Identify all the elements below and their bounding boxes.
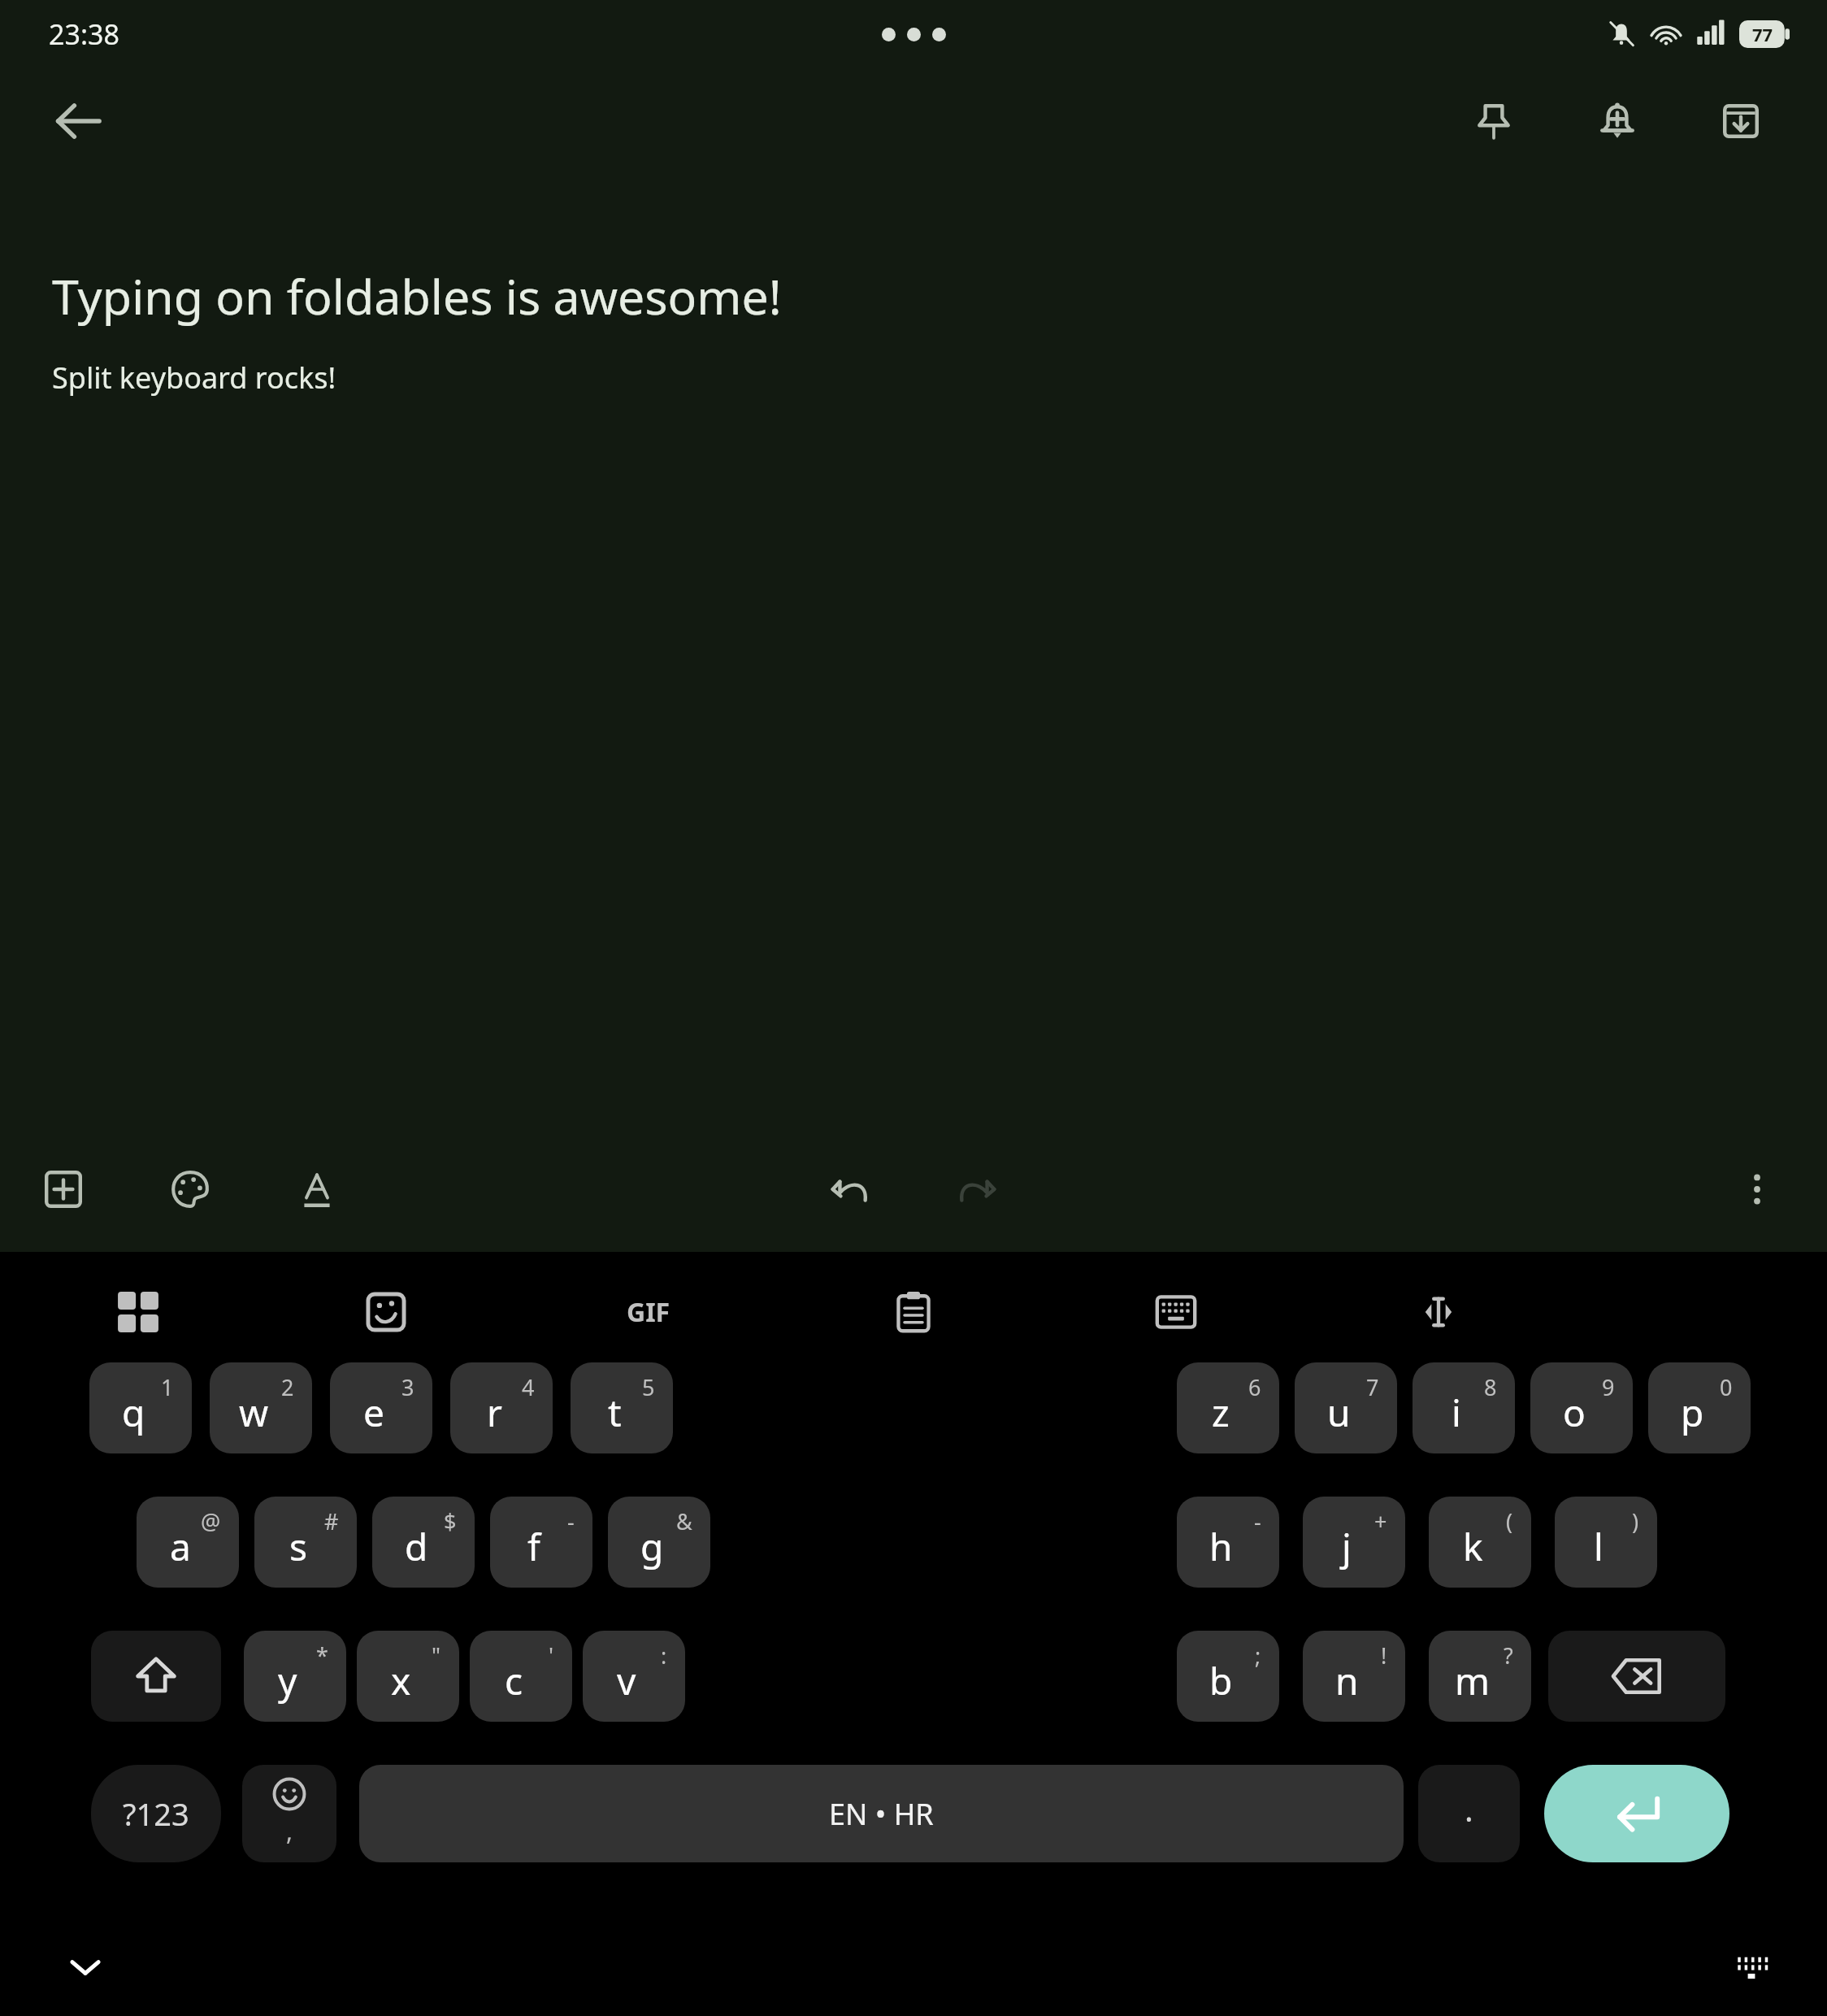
staticText: 9: [1602, 1372, 1615, 1402]
staticText: x: [391, 1655, 411, 1706]
staticText: h: [1209, 1521, 1233, 1572]
button[interactable]: d: [372, 1497, 475, 1588]
staticText: 3: [401, 1372, 414, 1402]
button[interactable]: w: [210, 1362, 312, 1453]
staticText: #: [324, 1506, 339, 1536]
button[interactable]: More options: [1720, 1152, 1794, 1227]
button[interactable]: Stickers: [341, 1267, 432, 1358]
button[interactable]: v: [583, 1631, 685, 1722]
staticText: k: [1463, 1521, 1483, 1572]
staticText: ?: [1504, 1640, 1513, 1671]
button[interactable]: Formatting: [280, 1152, 354, 1227]
staticText: g: [640, 1521, 664, 1572]
staticText: ?123: [123, 1792, 189, 1835]
staticText: GIF: [627, 1294, 670, 1330]
button[interactable]: EN • HR: [359, 1765, 1404, 1862]
button[interactable]: c: [470, 1631, 572, 1722]
staticText: 1: [161, 1372, 174, 1402]
button[interactable]: ?123: [91, 1765, 221, 1862]
staticText: !: [1381, 1640, 1387, 1671]
button[interactable]: Switch keyboard: [1716, 1932, 1786, 2002]
staticText: ): [1632, 1506, 1639, 1536]
button[interactable]: Enter: [1544, 1765, 1729, 1862]
staticText: i: [1452, 1387, 1461, 1438]
staticText: EN • HR: [829, 1794, 934, 1834]
staticText: a: [170, 1521, 191, 1572]
staticText: 4: [522, 1372, 535, 1402]
staticText: z: [1212, 1387, 1230, 1438]
button[interactable]: b: [1177, 1631, 1279, 1722]
staticText: u: [1327, 1387, 1351, 1438]
staticText: :: [661, 1640, 667, 1671]
button[interactable]: Clipboard: [868, 1267, 959, 1358]
staticText: 2: [281, 1372, 294, 1402]
button[interactable]: r: [450, 1362, 553, 1453]
staticText: ': [549, 1640, 554, 1671]
staticText: ": [432, 1640, 441, 1671]
button[interactable]: Redo: [938, 1152, 1013, 1227]
button[interactable]: Add attachment: [26, 1152, 101, 1227]
button[interactable]: Emoji: [242, 1765, 336, 1862]
staticText: d: [405, 1521, 428, 1572]
staticText: $: [444, 1506, 457, 1536]
button[interactable]: j: [1303, 1497, 1405, 1588]
button[interactable]: e: [330, 1362, 432, 1453]
staticText: n: [1335, 1655, 1359, 1706]
staticText: ;: [1255, 1640, 1261, 1671]
staticText: ,: [286, 1814, 293, 1848]
button[interactable]: Period: [1418, 1765, 1520, 1862]
button[interactable]: a: [137, 1497, 239, 1588]
staticText: 8: [1484, 1372, 1497, 1402]
button[interactable]: o: [1530, 1362, 1633, 1453]
button[interactable]: Archive: [1703, 84, 1778, 159]
button[interactable]: f: [490, 1497, 592, 1588]
staticText: +: [1374, 1506, 1387, 1536]
button[interactable]: Background colour: [153, 1152, 228, 1227]
button[interactable]: k: [1429, 1497, 1531, 1588]
staticText: &: [676, 1506, 692, 1536]
staticText: e: [363, 1387, 384, 1438]
button[interactable]: Hide keyboard: [50, 1932, 120, 2002]
staticText: -: [1254, 1506, 1261, 1536]
button[interactable]: p: [1648, 1362, 1751, 1453]
staticText: s: [289, 1521, 308, 1572]
staticText: w: [239, 1387, 269, 1438]
button[interactable]: GIF: [603, 1267, 694, 1358]
button[interactable]: s: [254, 1497, 357, 1588]
button[interactable]: Undo: [814, 1152, 889, 1227]
staticText: *: [316, 1640, 328, 1671]
staticText: l: [1594, 1521, 1604, 1572]
staticText: (: [1506, 1506, 1513, 1536]
staticText: @: [201, 1506, 221, 1536]
button[interactable]: n: [1303, 1631, 1405, 1722]
button[interactable]: Keyboard settings: [1130, 1267, 1222, 1358]
button[interactable]: y: [244, 1631, 346, 1722]
staticText: v: [617, 1655, 636, 1706]
button[interactable]: u: [1295, 1362, 1397, 1453]
button[interactable]: g: [608, 1497, 710, 1588]
button[interactable]: Pin note: [1456, 84, 1531, 159]
staticText: y: [278, 1655, 297, 1706]
button[interactable]: m: [1429, 1631, 1531, 1722]
button[interactable]: i: [1413, 1362, 1515, 1453]
button[interactable]: Back: [39, 82, 117, 160]
button[interactable]: Add reminder: [1580, 84, 1655, 159]
button[interactable]: Backspace: [1548, 1631, 1725, 1722]
staticText: o: [1563, 1387, 1586, 1438]
button[interactable]: x: [357, 1631, 459, 1722]
staticText: p: [1681, 1387, 1704, 1438]
button[interactable]: q: [89, 1362, 192, 1453]
button[interactable]: h: [1177, 1497, 1279, 1588]
button[interactable]: Shift: [91, 1631, 221, 1722]
button[interactable]: t: [571, 1362, 673, 1453]
button[interactable]: l: [1555, 1497, 1657, 1588]
staticText: f: [527, 1521, 540, 1572]
staticText: q: [122, 1387, 145, 1438]
staticText: Split keyboard rocks!: [52, 358, 336, 398]
button[interactable]: Text editing: [1393, 1267, 1484, 1358]
button[interactable]: Keyboard modes: [93, 1267, 184, 1358]
button[interactable]: z: [1177, 1362, 1279, 1453]
staticText: 6: [1248, 1372, 1261, 1402]
staticText: b: [1209, 1655, 1233, 1706]
staticText: 77: [1752, 22, 1773, 46]
